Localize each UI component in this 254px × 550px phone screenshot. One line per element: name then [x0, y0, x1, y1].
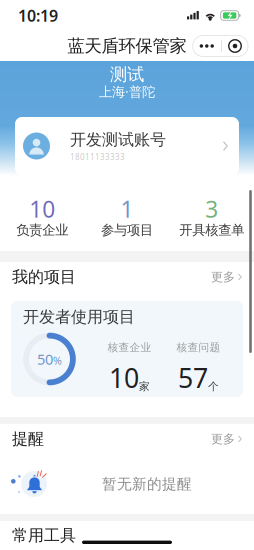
button[interactable]: 1 [85, 176, 169, 251]
staticText: 10:19 [18, 5, 58, 26]
staticText: 57 [178, 360, 208, 395]
staticText: 更多 [211, 270, 235, 284]
button[interactable]: More options [193, 35, 221, 56]
button[interactable]: 更多 [203, 265, 242, 289]
staticText: 10 [109, 360, 139, 395]
staticText: 1 [120, 194, 133, 224]
staticText: % [53, 354, 62, 368]
staticText: 更多 [211, 432, 235, 446]
button[interactable]: 10 [0, 176, 85, 251]
button[interactable]: Close mini program [222, 35, 248, 56]
staticText: 3 [205, 194, 218, 224]
staticText: 开具核查单 [179, 222, 244, 238]
staticText: 参与项目 [101, 222, 153, 238]
staticText: 负责企业 [16, 222, 68, 238]
staticText: 蓝天盾环保管家 [67, 35, 186, 57]
button[interactable]: 开发测试账号 [15, 117, 239, 175]
staticText: 我的项目 [12, 267, 76, 287]
staticText: 常用工具 [12, 526, 76, 545]
staticText: 18011133333 [70, 151, 125, 162]
staticText: 核查企业 [107, 341, 151, 354]
staticText: 核查问题 [176, 341, 220, 354]
staticText: 开发测试账号 [70, 130, 166, 150]
staticText: 个 [208, 380, 219, 393]
staticText: 50 [37, 349, 53, 369]
staticText: 上海·普陀 [99, 83, 155, 100]
button[interactable]: 3 [169, 176, 254, 251]
staticText: 提醒 [12, 429, 44, 449]
button[interactable]: 更多 [203, 427, 242, 451]
button[interactable]: 开发者使用项目 [11, 301, 243, 397]
staticText: 开发者使用项目 [23, 307, 135, 327]
staticText: 10 [29, 194, 55, 224]
staticText: 暂无新的提醒 [102, 475, 192, 493]
staticText: 测试 [110, 64, 144, 85]
staticText: 家 [139, 380, 150, 393]
